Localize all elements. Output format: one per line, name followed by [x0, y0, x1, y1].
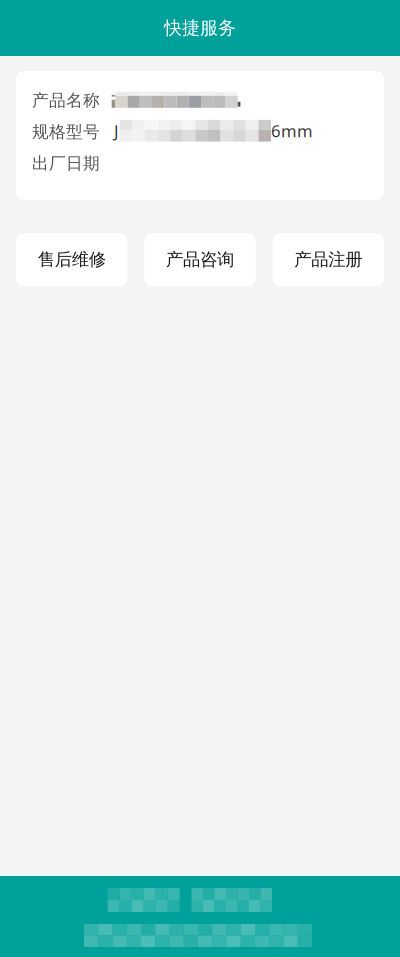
- staticText: 规格型号: [32, 121, 100, 142]
- staticText: 产品咨询: [166, 249, 234, 270]
- staticText: 产品注册: [294, 249, 362, 270]
- button[interactable]: 产品注册: [273, 233, 384, 286]
- staticText: 快捷服务: [164, 17, 236, 39]
- staticText: J: [114, 119, 119, 142]
- staticText: 售后维修: [38, 249, 106, 270]
- staticText: 6mm: [271, 119, 313, 142]
- staticText: 出厂日期: [32, 153, 100, 174]
- button[interactable]: 产品咨询: [144, 233, 256, 286]
- button[interactable]: 售后维修: [16, 233, 127, 286]
- staticText: 产品名称: [32, 90, 100, 111]
